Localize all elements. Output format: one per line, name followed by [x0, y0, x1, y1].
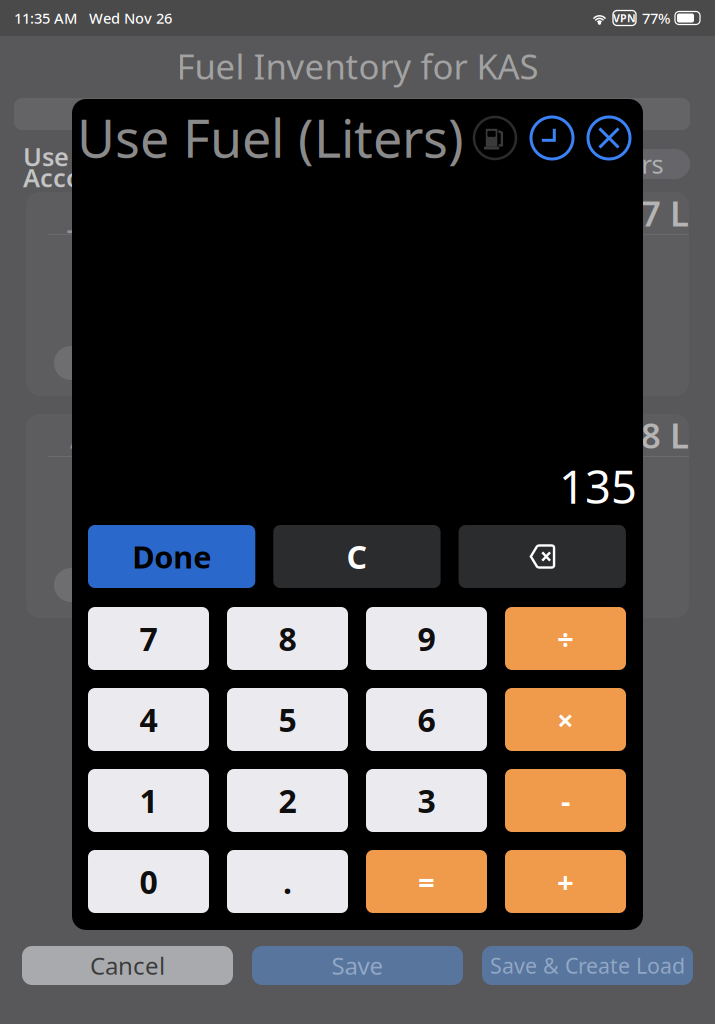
staticText: 135: [559, 456, 637, 516]
button[interactable]: 3: [366, 769, 487, 832]
button[interactable]: 8: [227, 607, 348, 670]
button[interactable]: -: [505, 769, 626, 832]
staticText: JET A: [70, 190, 148, 236]
staticText: 2: [278, 779, 296, 822]
staticText: Use Fuel: [23, 140, 128, 173]
staticText: 468 L: [601, 412, 689, 458]
button[interactable]: 6: [366, 688, 487, 751]
button[interactable]: Save: [252, 946, 463, 985]
staticText: 6: [417, 698, 435, 741]
button[interactable]: .: [227, 850, 348, 913]
staticText: +: [557, 862, 574, 901]
staticText: Save & Create Load: [490, 951, 685, 980]
button[interactable]: 2: [227, 769, 348, 832]
staticText: 7: [139, 617, 157, 660]
staticText: 9: [417, 617, 435, 660]
staticText: Done: [132, 536, 211, 577]
staticText: 77%: [642, 8, 670, 28]
staticText: 4: [139, 698, 157, 741]
staticText: 8: [278, 617, 296, 660]
staticText: ÷: [557, 619, 574, 658]
staticText: Wed Nov 26: [77, 8, 172, 28]
staticText: Account: [23, 161, 124, 194]
button[interactable]: ÷: [505, 607, 626, 670]
staticText: =: [418, 862, 435, 901]
staticText: Fuel Inventory for KAS: [176, 43, 538, 89]
staticText: Cancel: [90, 950, 165, 981]
staticText: 0: [139, 860, 157, 903]
staticText: Liters: [598, 147, 663, 181]
staticText: Save: [331, 950, 383, 981]
button[interactable]: ×: [505, 688, 626, 751]
button[interactable]: +: [505, 850, 626, 913]
staticText: Use Fuel (Liters): [77, 103, 464, 172]
button[interactable]: Cancel: [22, 946, 233, 985]
staticText: VPN: [613, 11, 636, 25]
button[interactable]: 1: [88, 769, 209, 832]
staticText: C: [346, 535, 367, 578]
button[interactable]: =: [366, 850, 487, 913]
staticText: AVGAS: [70, 412, 177, 458]
staticText: 11:35 AM: [14, 8, 77, 28]
staticText: .: [283, 860, 292, 903]
button[interactable]: 9: [366, 607, 487, 670]
staticText: 3: [417, 779, 435, 822]
staticText: 5: [278, 698, 296, 741]
button[interactable]: Delete: [459, 525, 626, 588]
button[interactable]: Close: [588, 117, 630, 159]
button[interactable]: 4: [88, 688, 209, 751]
button[interactable]: 5: [227, 688, 348, 751]
staticText: -: [561, 781, 570, 820]
staticText: 1,237 L: [571, 190, 689, 236]
button[interactable]: History: [531, 117, 573, 159]
button[interactable]: Fuel type: [474, 117, 516, 159]
button[interactable]: Done: [88, 525, 255, 588]
button[interactable]: 7: [88, 607, 209, 670]
button[interactable]: C: [273, 525, 441, 588]
staticText: ×: [557, 700, 574, 739]
button[interactable]: Save & Create Load: [482, 946, 693, 985]
staticText: 1: [139, 779, 157, 822]
button[interactable]: 0: [88, 850, 209, 913]
